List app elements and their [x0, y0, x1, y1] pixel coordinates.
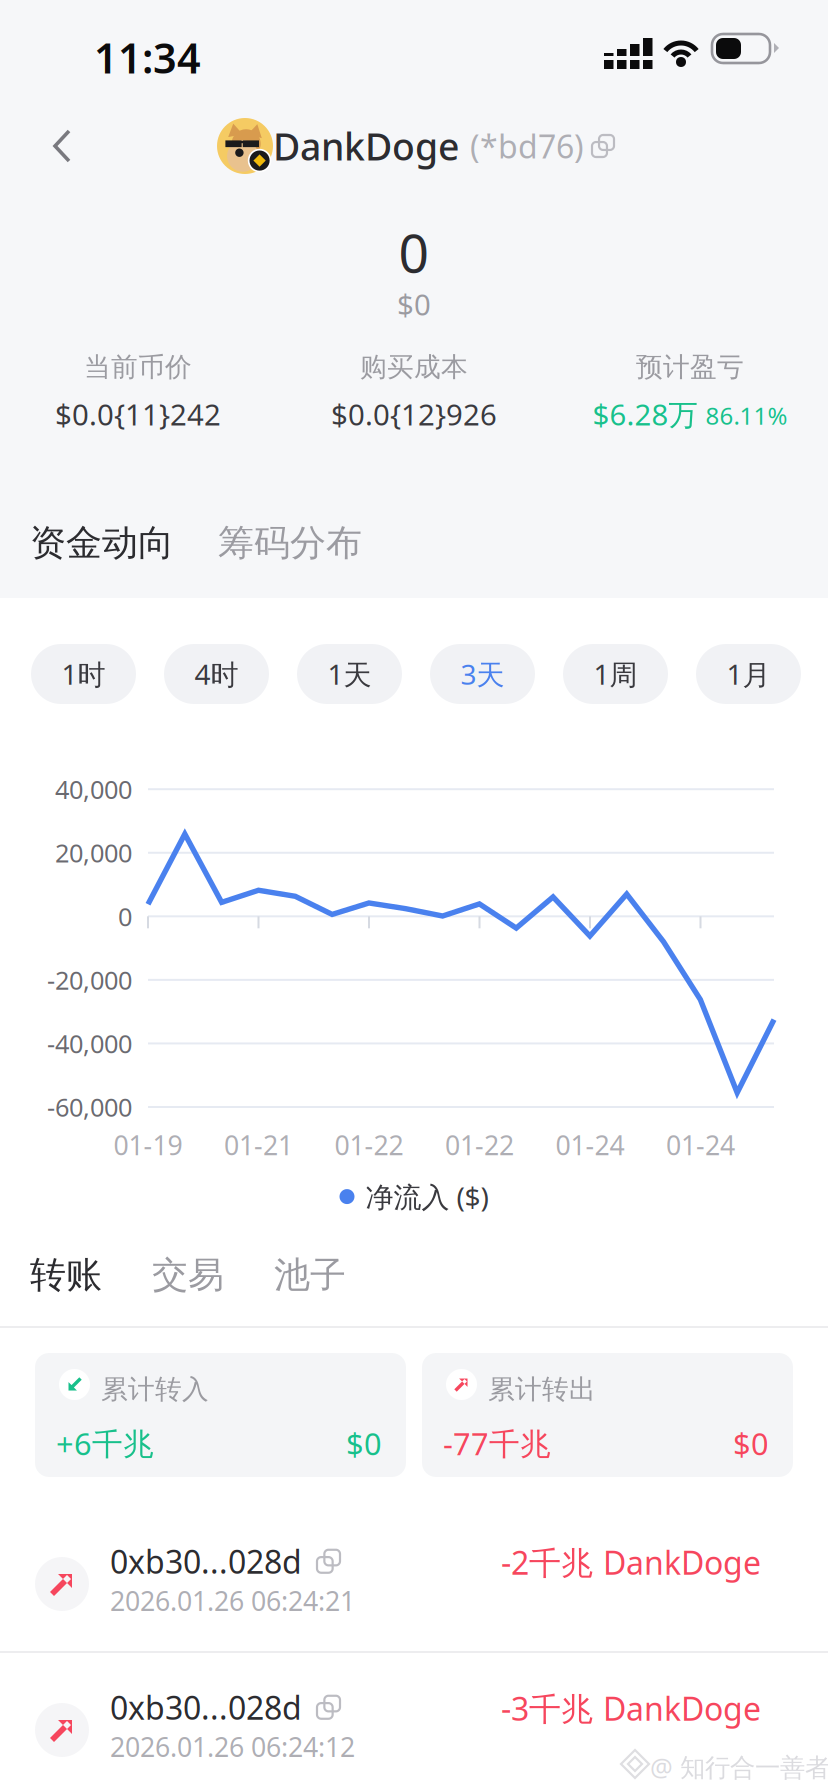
staticText: 池子 [274, 1253, 346, 1297]
button[interactable]: 资金动向 [30, 516, 174, 570]
staticText: 筹码分布 [218, 521, 362, 565]
staticText: $0 [733, 1423, 769, 1464]
staticText: 0 [118, 899, 132, 933]
staticText: (*bd76) [470, 125, 584, 167]
staticText: DankDoge [273, 121, 459, 171]
staticText: 1周 [593, 655, 637, 693]
button[interactable]: 1天 [297, 644, 402, 704]
staticText: 01-24 [555, 1127, 624, 1163]
staticText: 01-24 [666, 1127, 735, 1163]
staticText: 累计转出 [488, 1373, 596, 1406]
button[interactable]: 池子 [274, 1248, 346, 1302]
staticText: -77千兆 [443, 1423, 551, 1464]
button[interactable]: 1周 [563, 644, 668, 704]
staticText: 预计盈亏 [636, 351, 744, 383]
staticText: 01-22 [445, 1127, 514, 1163]
staticText: $0 [397, 284, 431, 323]
staticText: 1时 [61, 655, 105, 693]
staticText: 1天 [327, 655, 371, 693]
staticText: $0.0{12}926 [331, 394, 497, 433]
staticText: -60,000 [47, 1090, 132, 1124]
staticText: 当前币价 [84, 351, 192, 383]
staticText: 20,000 [55, 836, 132, 869]
staticText: 资金动向 [30, 521, 174, 565]
staticText: $0 [346, 1423, 382, 1464]
button[interactable]: 1月 [696, 644, 801, 704]
staticText: 购买成本 [360, 351, 468, 383]
staticText: 11:34 [94, 30, 201, 85]
button[interactable]: 交易 [152, 1248, 224, 1302]
button[interactable]: 转账 [30, 1248, 102, 1302]
button[interactable]: 累计转入 [35, 1353, 406, 1477]
staticText: 1月 [726, 655, 770, 693]
staticText: -3千兆 DankDoge [501, 1687, 761, 1729]
button[interactable]: 累计转出 [422, 1353, 793, 1477]
button[interactable]: Back [14, 104, 110, 188]
button[interactable]: 筹码分布 [218, 516, 362, 570]
staticText: 01-19 [113, 1127, 182, 1163]
staticText: 转账 [30, 1253, 102, 1297]
button[interactable]: Copy address [584, 119, 627, 173]
staticText: 3天 [460, 655, 504, 693]
staticText: -2千兆 DankDoge [501, 1541, 761, 1583]
staticText: -40,000 [47, 1027, 132, 1060]
button[interactable]: 3天 [430, 644, 535, 704]
staticText: 0xb30...028d [110, 1686, 302, 1728]
staticText: -20,000 [47, 963, 132, 997]
staticText: 0xb30...028d [110, 1540, 302, 1582]
button[interactable]: 0xb30...028d [0, 1508, 828, 1654]
staticText: 01-21 [224, 1127, 293, 1163]
staticText: 2026.01.26 06:24:12 [110, 1729, 355, 1764]
staticText: $6.28万 [592, 394, 697, 433]
button[interactable]: 4时 [164, 644, 269, 704]
staticText: $0.0{11}242 [55, 394, 221, 433]
staticText: @ 知行合一善者 [650, 1750, 828, 1784]
staticText: 2026.01.26 06:24:21 [110, 1583, 355, 1618]
staticText: 净流入 ($) [365, 1178, 488, 1215]
staticText: 4时 [194, 655, 238, 693]
staticText: 40,000 [55, 772, 132, 806]
button[interactable]: 1时 [31, 644, 136, 704]
staticText: 交易 [152, 1253, 224, 1297]
staticText: 0 [398, 217, 429, 287]
staticText: +6千兆 [56, 1423, 154, 1464]
staticText: 86.11% [705, 400, 787, 431]
staticText: 01-22 [334, 1127, 403, 1163]
staticText: 累计转入 [101, 1373, 209, 1406]
button[interactable]: 0xb30...028d [0, 1654, 828, 1792]
